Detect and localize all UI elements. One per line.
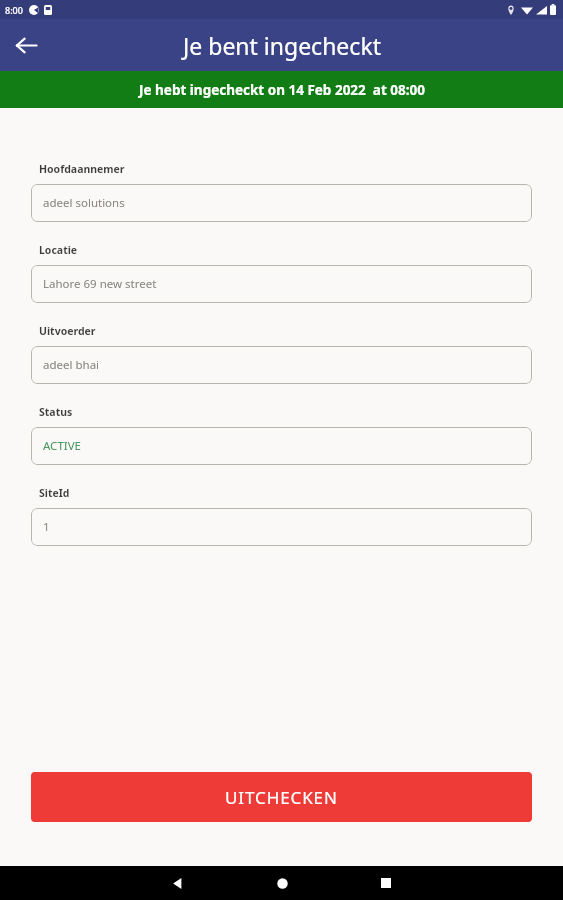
staticText: ACTIVE xyxy=(43,438,81,454)
staticText: adeel bhai xyxy=(43,357,100,373)
staticText: 8:00 xyxy=(5,4,23,16)
button[interactable]: Lahore 69 new street xyxy=(31,265,532,303)
button[interactable]: 1 xyxy=(31,508,532,546)
staticText: Lahore 69 new street xyxy=(43,276,157,292)
button[interactable]: Back xyxy=(8,27,44,63)
staticText: adeel solutions xyxy=(43,195,125,211)
staticText: Status xyxy=(39,405,73,419)
button[interactable]: adeel bhai xyxy=(31,346,532,384)
staticText: Hoofdaannemer xyxy=(39,162,125,176)
button[interactable]: Recent apps xyxy=(369,866,403,900)
staticText: Je hebt ingecheckt on 14 Feb 2022 at 08:… xyxy=(139,81,425,99)
button[interactable]: Home xyxy=(265,866,299,900)
staticText: Uitvoerder xyxy=(39,324,96,338)
staticText: UITCHECKEN xyxy=(225,786,338,809)
button[interactable]: adeel solutions xyxy=(31,184,532,222)
staticText: 1 xyxy=(43,519,50,535)
staticText: Locatie xyxy=(39,243,78,257)
staticText: Je bent ingecheckt xyxy=(183,30,381,61)
button[interactable]: UITCHECKEN xyxy=(31,772,532,822)
button[interactable]: ACTIVE xyxy=(31,427,532,465)
staticText: SiteId xyxy=(39,486,70,500)
button[interactable]: Back xyxy=(160,866,194,900)
